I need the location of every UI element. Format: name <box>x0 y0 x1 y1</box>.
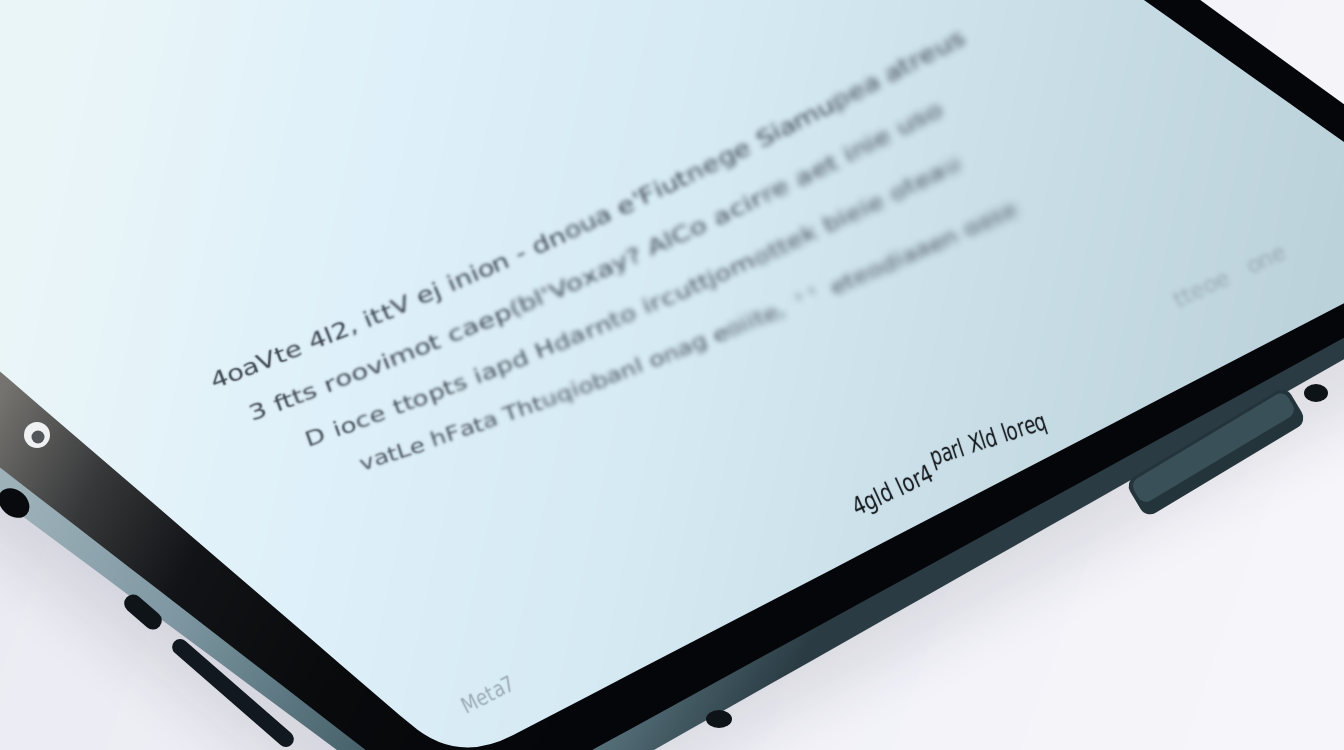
button[interactable]: Smartphone on a desk showing a document <box>0 0 1344 750</box>
